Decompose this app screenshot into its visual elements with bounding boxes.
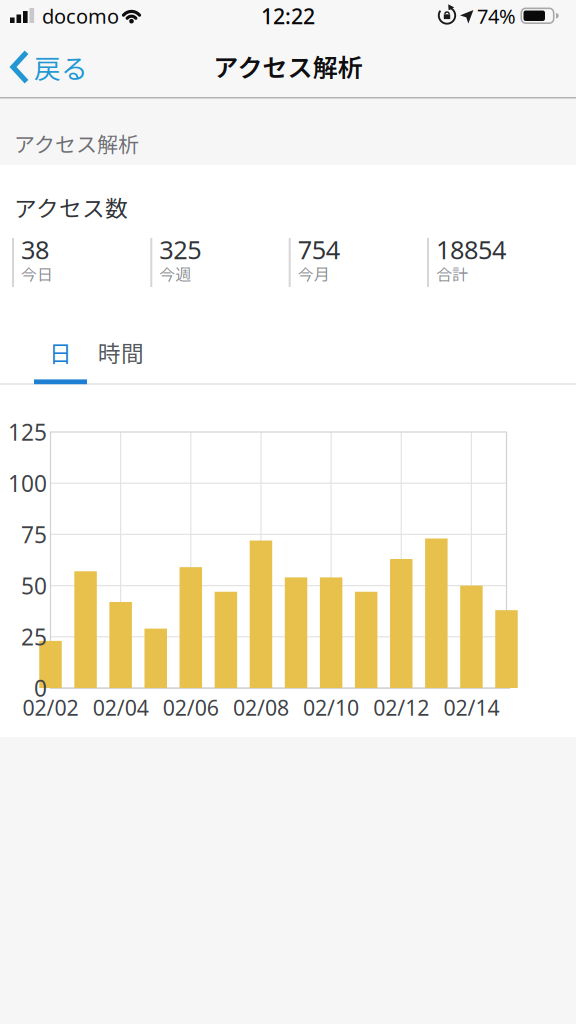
staticText: 754 [298,233,340,266]
button[interactable]: 戻る [10,45,88,89]
staticText: 02/02 [22,693,78,722]
button[interactable]: 日 [34,329,87,375]
staticText: アクセス数 [14,191,128,223]
staticText: 74% [477,3,516,29]
staticText: 02/12 [373,693,429,722]
staticText: アクセス解析 [213,48,362,84]
staticText: 戻る [34,48,88,86]
staticText: 125 [8,417,47,447]
staticText: 12:22 [261,2,315,30]
staticText: 50 [21,570,47,601]
staticText: 100 [8,468,47,498]
staticText: 今日 [21,262,53,285]
staticText: 18854 [436,233,506,266]
staticText: 合計 [436,262,468,285]
staticText: 日 [49,336,72,368]
staticText: アクセス解析 [14,128,139,158]
staticText: docomo [42,3,119,29]
button[interactable]: 時間 [90,329,152,375]
staticText: 02/06 [163,693,219,722]
staticText: 75 [21,519,47,549]
staticText: 時間 [98,336,144,368]
staticText: 02/10 [303,693,359,722]
staticText: 02/14 [443,693,499,722]
staticText: 今月 [298,262,330,285]
staticText: 今週 [159,262,191,285]
staticText: 25 [21,622,47,652]
staticText: 0 [34,673,47,703]
staticText: 325 [159,233,201,266]
staticText: 02/08 [233,693,289,722]
staticText: 02/04 [93,693,149,722]
staticText: 38 [21,233,49,266]
